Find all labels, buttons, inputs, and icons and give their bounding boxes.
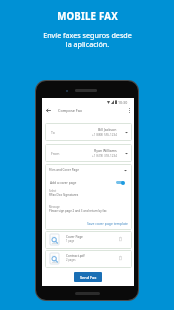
staticText: Add a cover page [50,181,77,185]
button[interactable]: Contract.pdf [45,250,132,268]
staticText: Envíe faxes seguros desde la aplicación. [43,30,132,49]
staticText: RFax Doc Signatures [49,193,79,197]
staticText: Compose Fax [58,108,82,113]
button[interactable]: Send Fax [74,272,102,282]
staticText: Please sign page 2 and 3 and return by f… [49,209,107,213]
staticText: MOBILE FAX [57,10,118,23]
staticText: 1 page [66,239,75,243]
staticText: Cover Page [66,235,83,239]
staticText: To [51,130,55,135]
staticText: Select [49,189,57,193]
staticText: From [51,151,60,156]
staticText: Contract.pdf [66,254,85,258]
staticText: Files and Cover Page [49,168,80,172]
staticText: 10:30 [118,100,128,105]
staticText: Bill Jackson [98,127,117,132]
staticText: 2 pages [66,258,76,262]
button[interactable]: Back [43,105,54,116]
button[interactable]: From [45,144,132,162]
button[interactable]: More options [124,105,135,116]
staticText: Message [49,205,60,209]
staticText: Ryan Williams [94,148,117,153]
staticText: Send Fax [80,275,97,280]
button[interactable]: Cover Page [45,231,132,249]
staticText: +1 (888) 555-1234 [92,133,117,137]
staticText: Save cover page template [87,221,128,226]
button[interactable]: To [45,123,132,141]
button[interactable]: Add a cover page [45,179,132,186]
staticText: +1 (678) 318-1234 [92,154,117,158]
button[interactable]: Save cover page template [75,220,128,227]
